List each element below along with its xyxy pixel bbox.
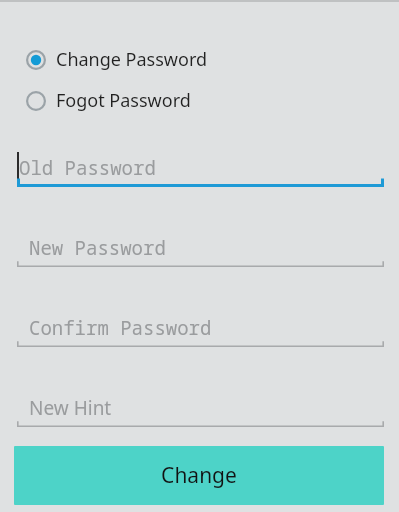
staticText: Fogot Password xyxy=(56,88,191,113)
button[interactable]: Change Password xyxy=(0,39,399,80)
button[interactable]: New Password xyxy=(0,229,399,279)
staticText: Old Password xyxy=(19,155,156,181)
button[interactable]: Change xyxy=(14,446,384,505)
button[interactable]: Fogot Password xyxy=(0,80,399,121)
button[interactable]: Confirm Password xyxy=(0,309,399,359)
staticText: New Hint xyxy=(29,395,112,421)
staticText: Confirm Password xyxy=(29,315,212,341)
staticText: New Password xyxy=(29,235,166,261)
staticText: Change Password xyxy=(56,47,208,72)
button[interactable]: New Hint xyxy=(0,389,399,439)
staticText: Change xyxy=(161,461,237,490)
button[interactable]: Old Password xyxy=(0,149,399,199)
